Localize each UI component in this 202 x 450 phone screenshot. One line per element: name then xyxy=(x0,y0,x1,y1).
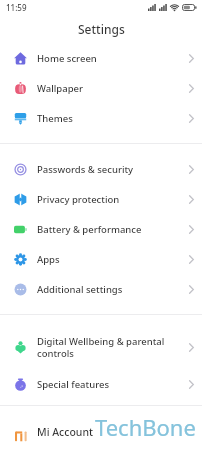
staticText: Battery & performance xyxy=(37,223,142,236)
staticText: Passwords & security xyxy=(37,163,134,176)
staticText: Additional settings xyxy=(37,283,123,296)
button[interactable]: Wallpaper xyxy=(0,73,202,103)
staticText: Home screen xyxy=(37,52,97,65)
button[interactable]: Privacy protection xyxy=(0,184,202,214)
button[interactable]: Special features xyxy=(0,369,202,399)
staticText: Themes xyxy=(37,112,73,125)
button[interactable]: Mi Account xyxy=(0,413,202,443)
staticText: 11:59 xyxy=(6,2,27,13)
staticText: TechBone xyxy=(95,412,196,442)
button[interactable]: Apps xyxy=(0,244,202,274)
staticText: Special features xyxy=(37,378,110,391)
button[interactable]: Home screen xyxy=(0,43,202,73)
staticText: Mi Account xyxy=(37,425,93,439)
button[interactable]: Themes xyxy=(0,103,202,133)
button[interactable]: Digital Wellbeing & parental controls xyxy=(0,325,202,369)
staticText: Digital Wellbeing & parental controls xyxy=(37,335,165,360)
button[interactable]: Additional settings xyxy=(0,274,202,304)
button[interactable]: Passwords & security xyxy=(0,154,202,184)
staticText: Privacy protection xyxy=(37,193,120,206)
staticText: Apps xyxy=(37,253,60,266)
staticText: Settings xyxy=(78,21,125,37)
button[interactable]: Battery & performance xyxy=(0,214,202,244)
staticText: Wallpaper xyxy=(37,82,83,95)
